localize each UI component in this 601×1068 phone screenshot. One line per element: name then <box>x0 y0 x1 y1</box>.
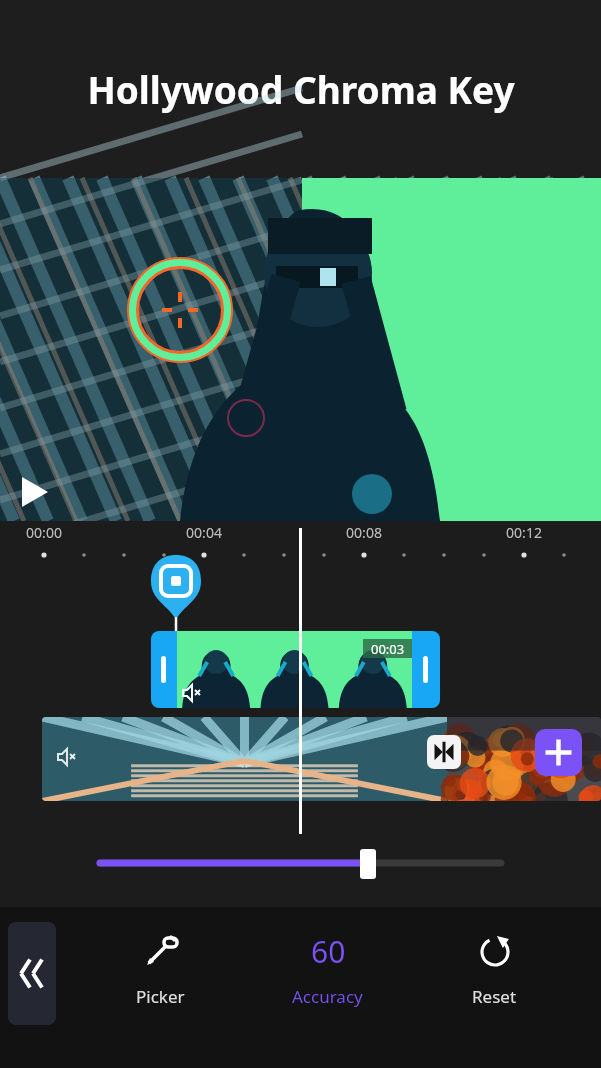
button[interactable] <box>42 717 601 801</box>
button[interactable]: Reset <box>444 929 544 1029</box>
staticText: 00:00 <box>4 523 84 542</box>
button[interactable]: Keyframe <box>149 553 203 623</box>
button[interactable]: Add clip <box>535 729 582 776</box>
staticText: Picker <box>136 985 185 1008</box>
staticText: Accuracy <box>292 985 363 1008</box>
staticText: Hollywood Chroma Key <box>87 64 515 114</box>
button[interactable]: Collapse <box>8 922 56 1025</box>
button[interactable]: Transition <box>427 735 461 769</box>
staticText: 00:03 <box>371 640 405 658</box>
staticText: 00:04 <box>164 523 244 542</box>
button[interactable]: Picker <box>110 929 210 1029</box>
staticText: 60 <box>311 931 346 972</box>
button[interactable]: 60 <box>277 929 377 1029</box>
staticText: Reset <box>472 985 517 1008</box>
staticText: 00:12 <box>484 523 564 542</box>
button[interactable]: Accuracy slider <box>360 849 376 879</box>
button[interactable]: 00:03 <box>151 631 440 708</box>
button[interactable]: Play <box>14 471 60 517</box>
staticText: 00:08 <box>324 523 404 542</box>
